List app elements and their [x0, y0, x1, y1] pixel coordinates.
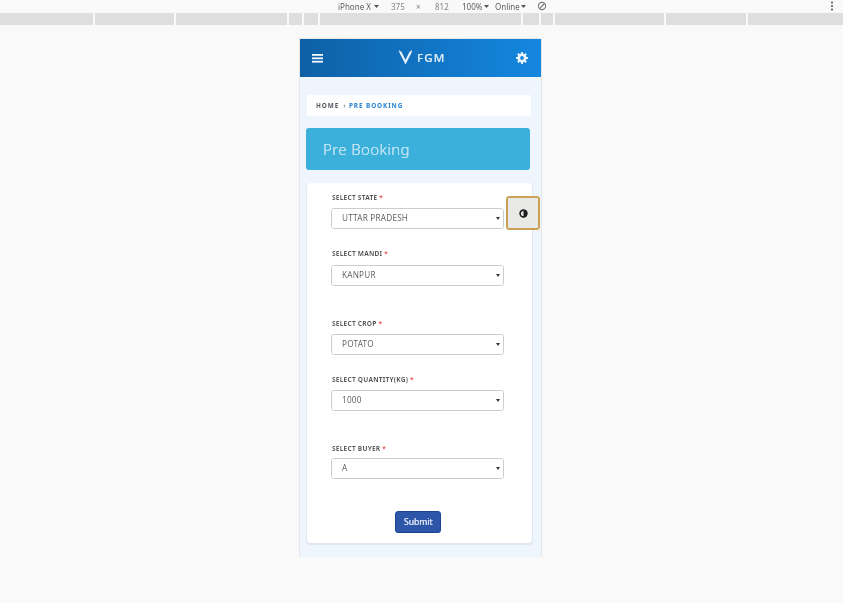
staticText: HOME — [316, 101, 340, 110]
staticText: iPhone X — [338, 1, 371, 12]
button[interactable]: iPhone X — [334, 0, 371, 13]
button[interactable]: 100% — [462, 0, 483, 13]
staticText: A — [342, 462, 348, 473]
button[interactable]: FGM — [417, 48, 446, 67]
staticText: 1000 — [342, 394, 362, 405]
staticText: SELECT MANDI * — [332, 249, 389, 258]
staticText: SELECT QUANTITY(KG) * — [332, 375, 414, 384]
staticText: 812 — [435, 1, 449, 12]
staticText: KANPUR — [342, 269, 376, 280]
button[interactable]: UTTAR PRADESH — [331, 208, 504, 229]
button[interactable]: KANPUR — [331, 265, 504, 286]
staticText: Submit — [404, 516, 433, 528]
staticText: SELECT BUYER * — [332, 444, 387, 453]
staticText: UTTAR PRADESH — [342, 212, 409, 223]
staticText: Online — [495, 1, 520, 12]
button[interactable]: POTATO — [331, 334, 504, 355]
button[interactable]: 1000 — [331, 390, 504, 411]
button[interactable] — [829, 1, 835, 11]
staticText: POTATO — [342, 338, 374, 349]
staticText: PRE BOOKING — [349, 101, 404, 110]
button[interactable]: Submit — [395, 511, 441, 533]
button[interactable] — [506, 196, 540, 230]
button[interactable]: PRE BOOKING — [349, 101, 404, 110]
button[interactable]: Online — [495, 0, 520, 13]
staticText: × — [416, 1, 421, 12]
staticText: › — [340, 101, 349, 110]
staticText: SELECT CROP * — [332, 319, 383, 328]
staticText: Pre Booking — [323, 139, 410, 159]
button[interactable]: HOME — [316, 101, 340, 110]
staticText: 100% — [462, 1, 483, 12]
button[interactable]: A — [331, 458, 504, 479]
staticText: FGM — [417, 50, 446, 66]
button[interactable] — [308, 49, 326, 67]
staticText: 375 — [391, 1, 405, 12]
button[interactable] — [513, 49, 531, 67]
staticText: SELECT STATE * — [332, 193, 384, 202]
